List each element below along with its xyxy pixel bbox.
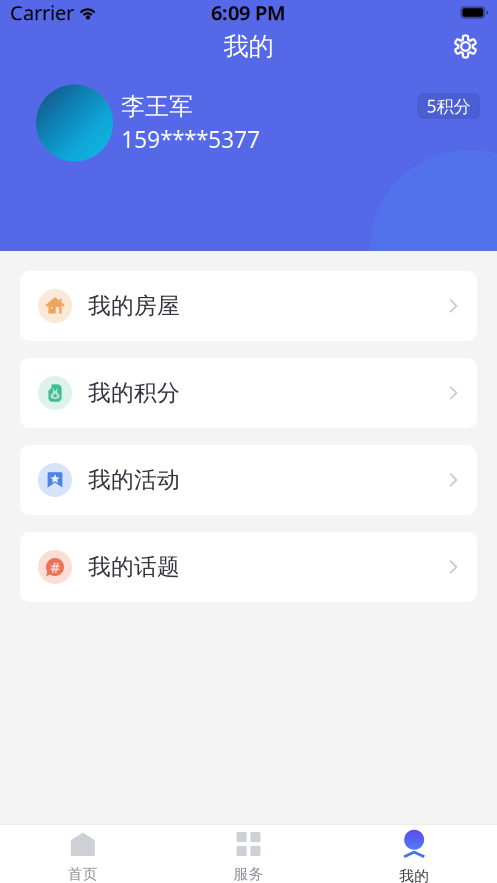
button[interactable]: 5积分 — [418, 94, 479, 118]
button[interactable]: Settings — [446, 27, 485, 66]
button[interactable]: 我的 — [331, 820, 497, 883]
button[interactable]: # — [20, 532, 477, 602]
staticText: 6:09 PM — [211, 0, 286, 26]
staticText: 我的 — [399, 867, 429, 883]
staticText: 我的活动 — [88, 466, 180, 494]
staticText: 我的 — [223, 31, 273, 62]
staticText: 李王军 — [121, 92, 193, 121]
staticText: 5积分 — [426, 94, 470, 117]
staticText: 我的房屋 — [88, 292, 180, 320]
staticText: 首页 — [68, 865, 98, 883]
staticText: Carrier — [10, 0, 74, 26]
button[interactable]: 首页 — [0, 822, 166, 883]
staticText: # — [50, 557, 59, 577]
button[interactable]: 我的房屋 — [20, 271, 477, 341]
staticText: 我的话题 — [88, 553, 180, 581]
staticText: 我的积分 — [88, 379, 180, 407]
button[interactable]: 我的活动 — [20, 445, 477, 515]
button[interactable]: 服务 — [166, 822, 331, 883]
staticText: 服务 — [233, 865, 263, 883]
button[interactable]: 我的积分 — [20, 358, 477, 428]
staticText: 159****5377 — [121, 124, 260, 154]
